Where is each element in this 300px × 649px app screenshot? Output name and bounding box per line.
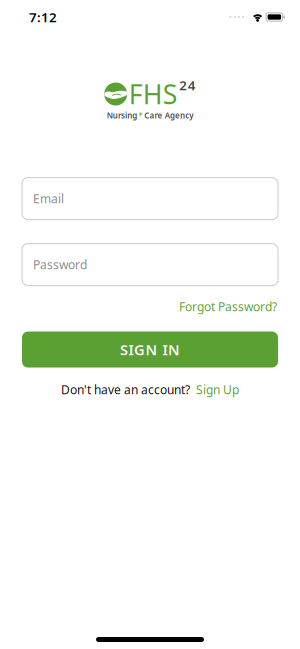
staticText: Password (33, 257, 87, 273)
button[interactable]: Forgot Password? (179, 299, 277, 314)
button[interactable]: Sign Up (196, 382, 239, 397)
staticText: Care Agency (144, 110, 193, 121)
staticText: Nursing (107, 110, 137, 121)
staticText: 7:12 (29, 8, 57, 26)
secureTextField[interactable]: Password (33, 257, 267, 273)
staticText: SIGN IN (120, 340, 180, 359)
staticText: FHS (129, 76, 178, 112)
staticText: Sign Up (196, 382, 239, 397)
staticText: Don't have an account? (61, 382, 190, 397)
staticText: Email (33, 191, 64, 207)
staticText: 24 (179, 76, 196, 94)
staticText: Email (33, 191, 64, 207)
textField[interactable]: Email (33, 191, 267, 207)
staticText: Password (33, 257, 87, 273)
button[interactable]: SIGN IN (22, 332, 278, 368)
staticText: + (138, 109, 143, 120)
staticText: Forgot Password? (179, 299, 277, 314)
